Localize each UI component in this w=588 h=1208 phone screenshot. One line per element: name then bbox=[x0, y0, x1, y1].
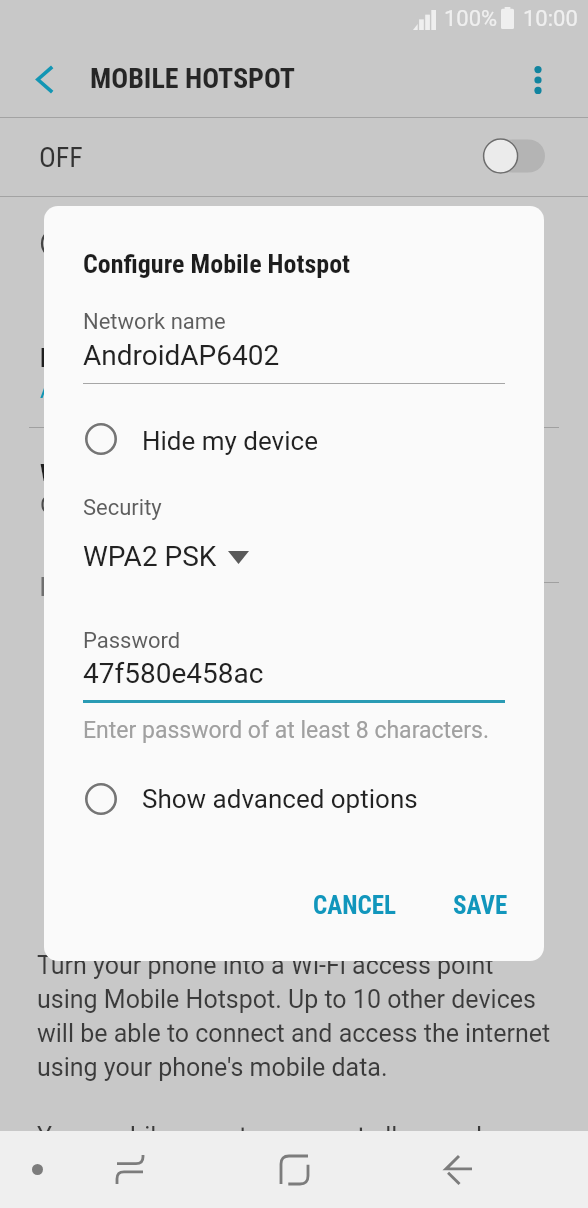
staticText: Password bbox=[40, 572, 142, 602]
button[interactable]: Home bbox=[244, 1131, 344, 1208]
button[interactable] bbox=[83, 534, 273, 576]
staticText: 10:00 bbox=[523, 6, 578, 32]
staticText: SAVE bbox=[453, 891, 508, 920]
staticText: Network name bbox=[83, 309, 226, 335]
button[interactable] bbox=[0, 118, 588, 196]
button[interactable]: Navigate up bbox=[10, 43, 80, 115]
staticText: Your mobile operator may not allow such … bbox=[37, 1122, 559, 1185]
staticText: Enter password of at least 8 characters. bbox=[83, 717, 489, 744]
staticText: Wi-Fi sharing bbox=[40, 459, 168, 487]
button[interactable]: Recent apps bbox=[80, 1131, 180, 1208]
staticText: AndroidAP6402 bbox=[83, 339, 280, 372]
staticText: Network name bbox=[40, 343, 190, 373]
staticText: Show advanced options bbox=[142, 784, 418, 814]
button[interactable] bbox=[83, 777, 505, 821]
staticText: 47f580e458ac bbox=[83, 657, 264, 690]
staticText: OFF bbox=[39, 141, 83, 174]
button[interactable]: CANCEL bbox=[302, 879, 406, 931]
staticText: Off bbox=[40, 491, 74, 519]
staticText: 100% bbox=[444, 6, 498, 32]
button[interactable]: Menu bbox=[0, 1131, 74, 1208]
staticText: AndroidAP6402 bbox=[40, 377, 202, 404]
button[interactable] bbox=[83, 417, 505, 461]
staticText: WPA2 PSK bbox=[83, 540, 217, 573]
button[interactable]: SAVE bbox=[441, 879, 519, 931]
button[interactable]: Back bbox=[409, 1131, 509, 1208]
staticText: Security bbox=[83, 495, 162, 521]
staticText: CANCEL bbox=[313, 891, 396, 920]
staticText: Hide my device bbox=[142, 426, 318, 456]
staticText: Turn your phone into a Wi-Fi access poin… bbox=[37, 951, 559, 1082]
staticText: Configure Mobile Hotspot bbox=[83, 249, 351, 279]
staticText: MOBILE HOTSPOT bbox=[90, 62, 295, 95]
button[interactable]: More options bbox=[512, 44, 564, 116]
staticText: Password bbox=[83, 628, 181, 654]
